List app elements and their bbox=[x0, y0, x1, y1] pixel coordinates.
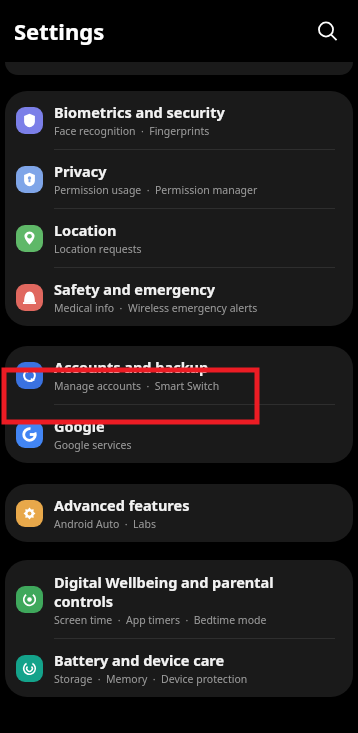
button[interactable]: Google bbox=[5, 405, 353, 463]
button[interactable]: Biometrics and security bbox=[5, 91, 353, 150]
staticText: Permission usage · Permission manager bbox=[54, 183, 258, 197]
button[interactable]: Advanced features bbox=[5, 484, 353, 542]
staticText: Advanced features bbox=[54, 495, 190, 515]
staticText: Location bbox=[54, 220, 117, 240]
staticText: Biometrics and security bbox=[54, 102, 225, 122]
staticText: Google services bbox=[54, 438, 132, 452]
staticText: Location requests bbox=[54, 242, 142, 256]
button[interactable]: Safety and emergency bbox=[5, 268, 353, 326]
staticText: Privacy bbox=[54, 161, 107, 181]
button[interactable]: Location bbox=[5, 209, 353, 268]
staticText: Android Auto · Labs bbox=[54, 517, 156, 531]
staticText: Medical info · Wireless emergency alerts bbox=[54, 301, 258, 315]
button[interactable]: Battery and device care bbox=[5, 639, 353, 697]
staticText: Battery and device care bbox=[54, 650, 225, 670]
staticText: Storage · Memory · Device protection bbox=[54, 672, 248, 686]
button[interactable]: Digital Wellbeing and parental controls bbox=[5, 560, 353, 639]
button[interactable]: Search bbox=[312, 16, 342, 46]
button[interactable]: Accounts and backup bbox=[5, 346, 353, 405]
staticText: Settings bbox=[14, 16, 105, 46]
staticText: Digital Wellbeing and parental controls bbox=[54, 572, 274, 611]
staticText: Google bbox=[54, 416, 105, 436]
button[interactable] bbox=[5, 62, 353, 75]
staticText: Screen time · App timers · Bedtime mode bbox=[54, 613, 267, 627]
staticText: Safety and emergency bbox=[54, 279, 216, 299]
staticText: Accounts and backup bbox=[54, 357, 209, 377]
button[interactable]: Privacy bbox=[5, 150, 353, 209]
staticText: Face recognition · Fingerprints bbox=[54, 124, 210, 138]
staticText: Manage accounts · Smart Switch bbox=[54, 379, 220, 393]
